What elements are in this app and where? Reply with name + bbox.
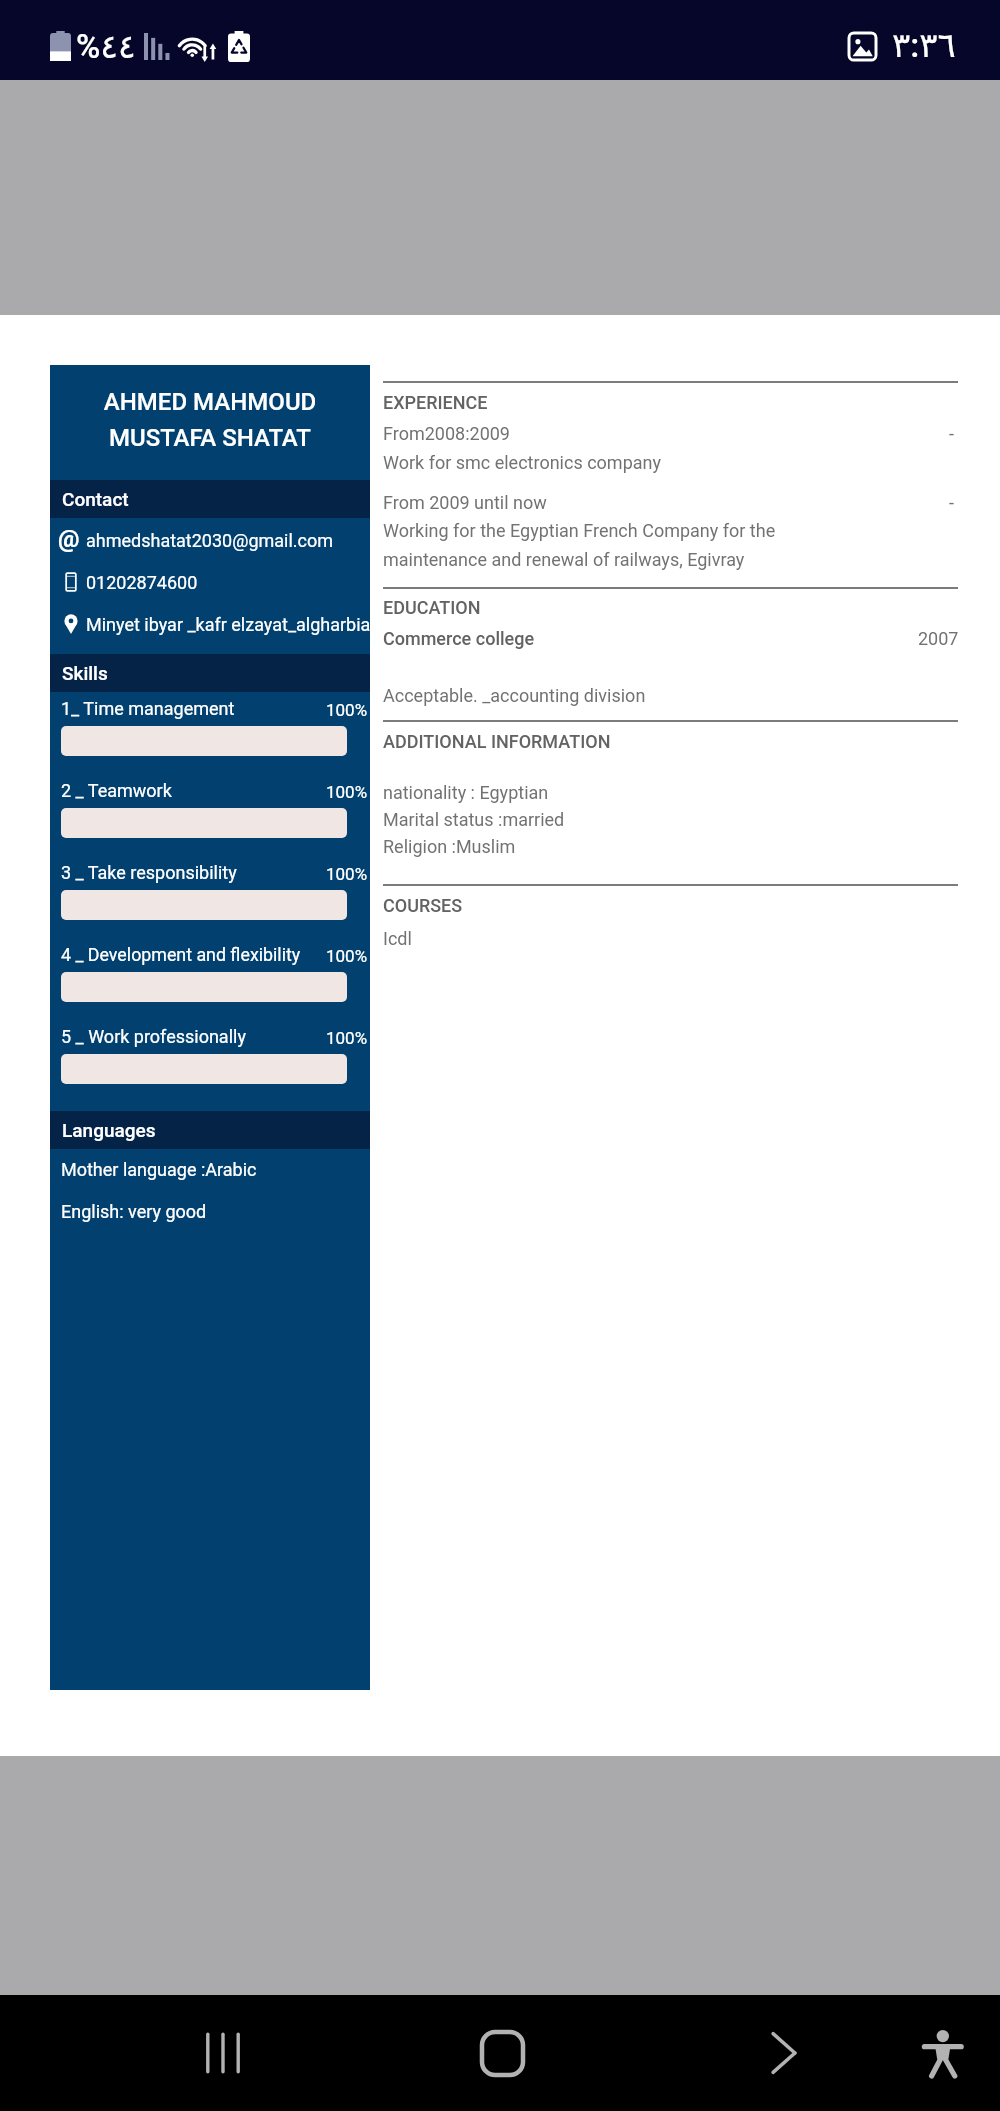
staticText: - — [949, 423, 954, 444]
staticText: 1_ Time management — [61, 698, 235, 719]
button[interactable]: Back — [741, 1995, 826, 2111]
staticText: From 2009 until now — [383, 492, 547, 513]
staticText: COURSES — [383, 895, 463, 916]
staticText: Marital status :married — [383, 809, 565, 830]
staticText: ahmedshatat2030@gmail.com — [86, 530, 334, 551]
staticText: maintenance and renewal of railways, Egi… — [383, 549, 745, 570]
button[interactable]: Minyet ibyar _kafr elzayat_algharbia — [50, 606, 370, 642]
staticText: Contact — [62, 488, 129, 510]
staticText: EXPERIENCE — [383, 392, 488, 413]
staticText: @ — [58, 525, 80, 553]
button[interactable]: Contact — [50, 480, 370, 518]
button[interactable]: Accessibility — [899, 1995, 984, 2111]
staticText: nationality : Egyptian — [383, 782, 549, 803]
staticText: ADDITIONAL INFORMATION — [383, 731, 611, 752]
staticText: 100% — [326, 1028, 368, 1048]
staticText: Acceptable. _accounting division — [383, 685, 646, 706]
staticText: 4 _ Development and flexibility — [61, 944, 301, 965]
staticText: Minyet ibyar _kafr elzayat_algharbia — [86, 614, 371, 635]
staticText: 3 _ Take responsibility — [61, 862, 237, 883]
staticText: Religion :Muslim — [383, 836, 516, 857]
button[interactable]: Skills — [50, 654, 370, 692]
staticText: 100% — [326, 946, 368, 966]
staticText: English: very good — [61, 1201, 207, 1222]
staticText: 100% — [326, 864, 368, 884]
staticText: EDUCATION — [383, 597, 481, 618]
staticText: ٣:٣٦ — [892, 25, 956, 65]
button[interactable]: 3 _ Take responsibility — [50, 859, 370, 937]
button[interactable]: @ — [50, 522, 370, 558]
staticText: 100% — [326, 700, 368, 720]
staticText: 2007 — [918, 628, 959, 649]
button[interactable]: Languages — [50, 1111, 370, 1149]
staticText: %٤٤ — [76, 27, 136, 66]
staticText: From2008:2009 — [383, 423, 510, 444]
staticText: 5 _ Work professionally — [61, 1026, 246, 1047]
staticText: 01202874600 — [86, 572, 198, 593]
button[interactable]: 01202874600 — [50, 564, 370, 600]
staticText: AHMED MAHMOUD MUSTAFA SHATAT — [50, 388, 370, 452]
staticText: Languages — [62, 1119, 156, 1141]
staticText: - — [949, 492, 954, 513]
button[interactable]: 4 _ Development and flexibility — [50, 941, 370, 1019]
button[interactable]: Home — [460, 1995, 545, 2111]
staticText: Commerce college — [383, 628, 535, 649]
staticText: Work for smc electronics company — [383, 452, 661, 473]
button[interactable]: 2 _ Teamwork — [50, 777, 370, 855]
staticText: Mother language :Arabic — [61, 1159, 257, 1180]
staticText: Icdl — [383, 928, 412, 949]
staticText: Working for the Egyptian French Company … — [383, 520, 776, 541]
staticText: 2 _ Teamwork — [61, 780, 172, 801]
button[interactable]: 1_ Time management — [50, 695, 370, 773]
staticText: Skills — [62, 662, 108, 684]
staticText: 100% — [326, 782, 368, 802]
button[interactable]: Recents — [180, 1995, 265, 2111]
button[interactable]: 5 _ Work professionally — [50, 1023, 370, 1101]
